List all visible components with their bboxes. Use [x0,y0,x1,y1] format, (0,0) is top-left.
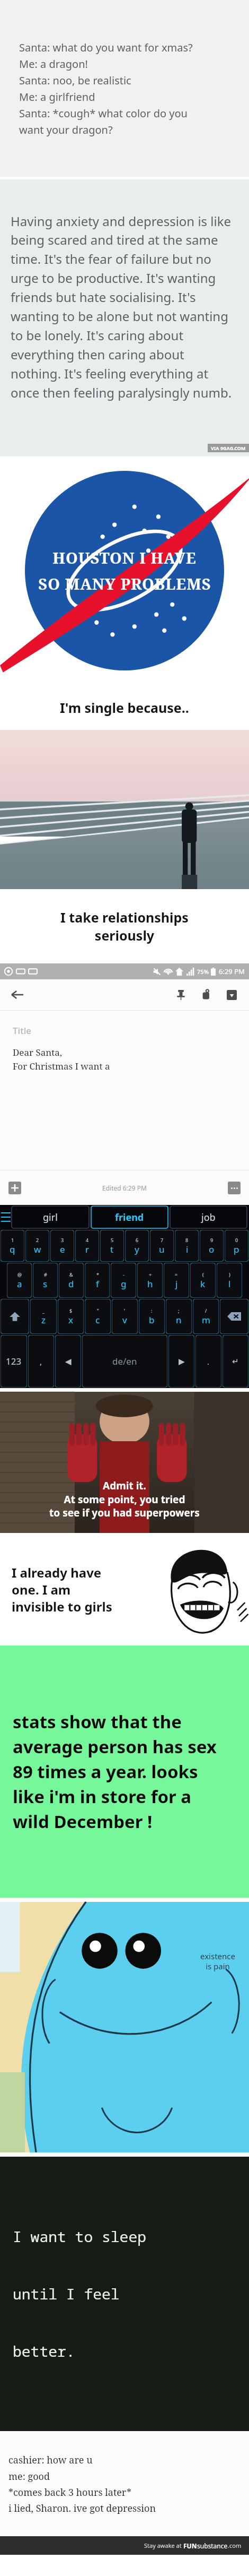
staticText: Admit it. At some point, you tried to se… [0,1479,249,1519]
staticText: @ [17,1271,22,1278]
button[interactable]: Admit it. At some point, you tried to se… [0,1392,249,1533]
staticText: : [151,1307,153,1314]
button[interactable]: 0 [225,1230,248,1262]
button[interactable]: cashier: how are u me: good *comes back … [0,2431,249,2536]
button[interactable]: ▶ [168,1335,194,1388]
staticText: n [176,1314,182,1326]
staticText: girl [43,1211,58,1224]
button[interactable]: More options [228,1182,241,1194]
button[interactable]: : [139,1299,165,1334]
button[interactable]: $ [58,1299,84,1334]
staticText: l [228,1278,231,1290]
button[interactable]: I'm single because.. [0,685,249,730]
staticText: 6:29 PM [219,967,245,976]
staticText: SO MANY PROBLEMS [38,573,211,594]
button[interactable]: _ [30,1299,57,1334]
button[interactable]: @ [7,1263,32,1298]
staticText: f [96,1278,99,1290]
staticText: + [149,1271,152,1278]
button[interactable]: 3 [50,1230,74,1262]
staticText: cashier: how are u me: good *comes back … [8,2453,156,2514]
button[interactable]: Back [8,986,26,1004]
button[interactable]: = [164,1263,189,1298]
button[interactable]: ↵ [223,1335,248,1388]
button[interactable]: 5 [100,1230,124,1262]
button[interactable]: ◀ [55,1335,81,1388]
staticText: VIA 9GAG.COM [211,445,246,451]
button[interactable]: I take relationships seriously [0,889,249,963]
staticText: " [97,1307,99,1314]
button[interactable]: . [195,1335,221,1388]
staticText: e [60,1243,65,1255]
button[interactable]: 2 [25,1230,49,1262]
button[interactable]: girl [12,1206,89,1228]
button[interactable]: friend [91,1206,168,1228]
staticText: p [234,1243,239,1255]
button[interactable] [0,730,249,889]
staticText: t [110,1243,114,1255]
staticText: Edited 6:29 PM [102,1184,147,1192]
button[interactable]: / [193,1299,219,1334]
staticText: Santa: what do you want for xmas? Me: a … [19,40,193,137]
button[interactable]: Title [0,1011,249,1170]
button[interactable]: Archive [223,986,241,1004]
staticText: s [43,1278,48,1290]
staticText: ) [229,1271,230,1278]
button[interactable]: # [33,1263,58,1298]
button[interactable]: 1 [1,1230,24,1262]
button[interactable]: Santa: what do you want for xmas? Me: a … [0,0,249,177]
button[interactable]: + [137,1263,163,1298]
staticText: ( [202,1271,204,1278]
staticText: 7 [161,1237,164,1243]
button[interactable]: I want to sleep until I feel better. [0,2157,249,2431]
button[interactable]: stats show that the average person has s… [0,1645,249,1898]
button[interactable]: 7 [150,1230,174,1262]
staticText: ↵ [232,1357,239,1366]
button[interactable]: Reminder [197,986,215,1004]
button[interactable]: 9 [200,1230,224,1262]
staticText: a [17,1278,22,1290]
button[interactable]: de/en [82,1335,167,1388]
button[interactable]: " [85,1299,111,1334]
staticText: r [85,1243,90,1255]
button[interactable]: Pin [172,986,190,1004]
staticText: job [201,1211,216,1224]
button[interactable]: & [59,1263,84,1298]
staticText: j [175,1278,178,1290]
button[interactable]: 123 [1,1335,27,1388]
button[interactable]: Shift [1,1299,29,1334]
button[interactable]: ( [190,1263,216,1298]
staticText: . [207,1356,210,1367]
button[interactable]: Stay awake at [0,2536,242,2555]
staticText: 123 [6,1355,22,1367]
button[interactable]: - [111,1263,136,1298]
button[interactable]: job [170,1206,247,1228]
staticText: substance [197,2541,228,2550]
button[interactable]: ' [112,1299,138,1334]
staticText: * [96,1271,99,1278]
button[interactable]: existence is pain [0,1902,249,2152]
staticText: 3 [61,1237,64,1243]
staticText: 4 [86,1237,89,1243]
button[interactable]: * [85,1263,110,1298]
button[interactable]: , [28,1335,54,1388]
button[interactable]: I already have one. I am invisible to gi… [0,1533,249,1645]
button[interactable]: Having anxiety and depression is like be… [0,179,249,456]
staticText: de/en [112,1355,137,1367]
staticText: y [135,1243,139,1255]
staticText: h [147,1278,153,1290]
staticText: / [205,1307,207,1314]
button[interactable]: 8 [175,1230,199,1262]
staticText: x [68,1314,73,1326]
staticText: _ [42,1307,45,1314]
button[interactable]: HOUSTON I HAVE [0,456,249,685]
button[interactable]: 6 [125,1230,149,1262]
staticText: FUN [183,2541,197,2550]
staticText: existence is pain [200,1951,235,1971]
button[interactable]: ) [217,1263,242,1298]
button[interactable]: ; [166,1299,192,1334]
staticText: Stay awake at [144,2541,183,2549]
button[interactable]: Add [8,1182,21,1194]
button[interactable]: 4 [75,1230,99,1262]
button[interactable]: Backspace [220,1299,248,1334]
